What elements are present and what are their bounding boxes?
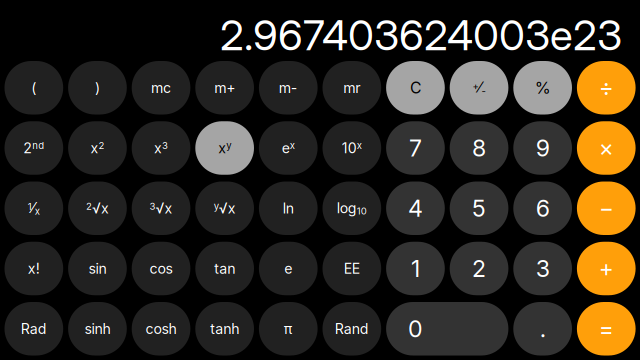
button[interactable]: 6: [513, 181, 572, 235]
button[interactable]: 2nd: [4, 121, 63, 175]
button[interactable]: π: [259, 302, 318, 355]
staticText: Rad: [21, 320, 47, 337]
staticText: tan: [214, 260, 235, 277]
staticText: −: [599, 194, 614, 222]
button[interactable]: EE: [322, 242, 381, 295]
button[interactable]: 7: [386, 121, 445, 175]
button[interactable]: mc: [132, 61, 190, 114]
staticText: x!: [28, 260, 40, 277]
button[interactable]: x3: [132, 121, 190, 175]
button[interactable]: 1: [386, 242, 445, 295]
staticText: 8: [472, 134, 486, 162]
button[interactable]: x2: [68, 121, 127, 175]
button[interactable]: C: [386, 61, 445, 114]
button[interactable]: tan: [195, 242, 254, 295]
staticText: 0: [408, 315, 423, 343]
button[interactable]: %: [513, 61, 572, 114]
staticText: mr: [343, 79, 360, 96]
staticText: mc: [151, 79, 171, 96]
staticText: 2: [472, 254, 486, 283]
button[interactable]: +: [577, 242, 636, 295]
button[interactable]: 1⁄x: [4, 181, 63, 235]
button[interactable]: cos: [132, 242, 190, 295]
staticText: m+: [214, 79, 235, 96]
staticText: ×: [599, 134, 614, 162]
button[interactable]: 2√x: [68, 181, 127, 235]
button[interactable]: ): [68, 61, 127, 114]
button[interactable]: mr: [322, 61, 381, 114]
button[interactable]: ex: [259, 121, 318, 175]
button[interactable]: 5: [450, 181, 508, 235]
staticText: y√x: [214, 200, 236, 217]
button[interactable]: 8: [450, 121, 508, 175]
staticText: ln: [283, 200, 294, 217]
button[interactable]: ln: [259, 181, 318, 235]
button[interactable]: tanh: [195, 302, 254, 355]
staticText: ÷: [599, 74, 614, 102]
button[interactable]: cosh: [132, 302, 190, 355]
button[interactable]: xy: [195, 121, 254, 175]
staticText: sin: [88, 260, 106, 277]
staticText: tanh: [210, 320, 239, 337]
staticText: Rand: [335, 320, 369, 337]
staticText: m-: [279, 79, 298, 96]
staticText: 3: [536, 254, 550, 283]
staticText: 3√x: [149, 200, 172, 217]
staticText: sinh: [84, 320, 110, 337]
staticText: 10x: [342, 140, 362, 156]
staticText: 4: [408, 194, 423, 222]
staticText: %: [535, 78, 551, 98]
staticText: 2√x: [86, 200, 109, 217]
button[interactable]: m+: [195, 61, 254, 114]
staticText: e: [284, 260, 292, 277]
staticText: log10: [337, 200, 367, 217]
staticText: 2nd: [23, 140, 44, 156]
staticText: 5: [472, 194, 486, 222]
button[interactable]: +⁄-: [450, 61, 508, 114]
button[interactable]: 10x: [322, 121, 381, 175]
staticText: 1: [411, 254, 420, 283]
staticText: (: [31, 79, 36, 96]
button[interactable]: y√x: [195, 181, 254, 235]
staticText: x2: [90, 140, 104, 156]
staticText: ): [95, 79, 100, 96]
staticText: 7: [409, 134, 422, 162]
button[interactable]: 4: [386, 181, 445, 235]
staticText: xy: [218, 140, 231, 156]
button[interactable]: ×: [577, 121, 636, 175]
staticText: π: [284, 320, 293, 337]
staticText: 6: [536, 194, 550, 222]
button[interactable]: Rand: [322, 302, 381, 355]
staticText: +⁄-: [473, 79, 486, 96]
staticText: EE: [344, 260, 360, 277]
staticText: ex: [282, 140, 295, 156]
button[interactable]: 9: [513, 121, 572, 175]
staticText: cosh: [145, 320, 176, 337]
staticText: x3: [154, 140, 168, 156]
button[interactable]: 2: [450, 242, 508, 295]
button[interactable]: e: [259, 242, 318, 295]
button[interactable]: =: [577, 302, 636, 355]
staticText: 2.967403624003e23: [220, 9, 622, 60]
staticText: 9: [536, 134, 550, 162]
button[interactable]: (: [4, 61, 63, 114]
button[interactable]: x!: [4, 242, 63, 295]
staticText: cos: [149, 260, 172, 277]
staticText: C: [410, 78, 421, 97]
button[interactable]: 0: [386, 302, 508, 355]
button[interactable]: 3: [513, 242, 572, 295]
staticText: .: [540, 315, 546, 343]
button[interactable]: sin: [68, 242, 127, 295]
staticText: =: [599, 315, 614, 343]
button[interactable]: sinh: [68, 302, 127, 355]
button[interactable]: −: [577, 181, 636, 235]
button[interactable]: m-: [259, 61, 318, 114]
button[interactable]: ÷: [577, 61, 636, 114]
button[interactable]: log10: [322, 181, 381, 235]
staticText: +: [599, 255, 614, 282]
staticText: 1⁄x: [28, 200, 40, 217]
button[interactable]: Rad: [4, 302, 63, 355]
button[interactable]: 3√x: [132, 181, 190, 235]
button[interactable]: .: [513, 302, 572, 355]
